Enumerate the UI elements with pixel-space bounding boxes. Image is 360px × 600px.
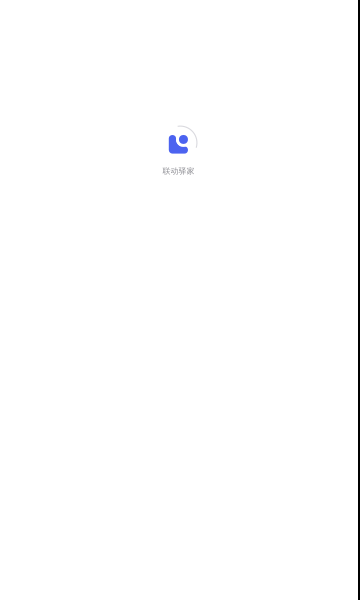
staticText: 联动驿家 xyxy=(163,166,195,176)
